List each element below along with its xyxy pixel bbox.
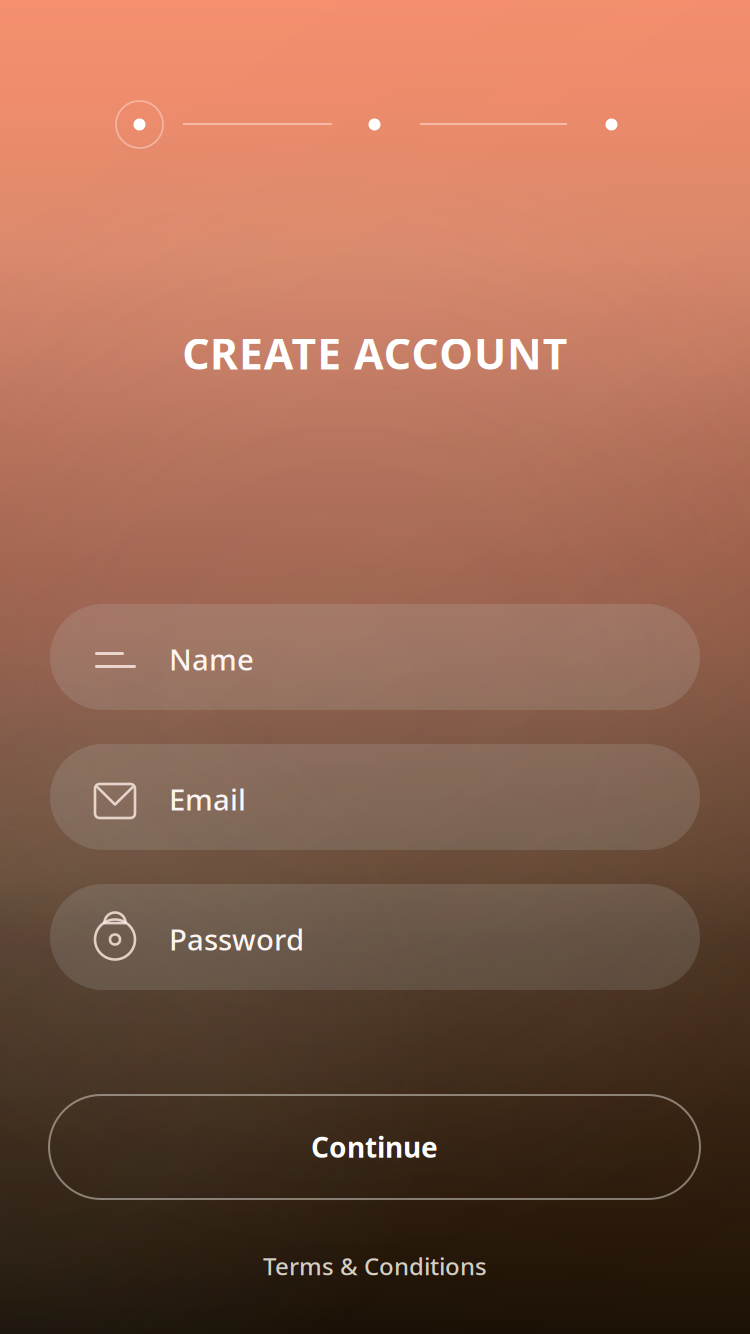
staticText: Name xyxy=(169,639,254,678)
staticText: Password xyxy=(169,919,304,958)
staticText: Continue xyxy=(311,1128,438,1166)
staticText: Email xyxy=(169,779,246,818)
button[interactable]: Password xyxy=(50,884,700,990)
staticText: Terms & Conditions xyxy=(263,1250,487,1282)
button[interactable]: Email xyxy=(50,744,700,850)
staticText: CREATE ACCOUNT xyxy=(182,325,568,381)
button[interactable]: Terms & Conditions xyxy=(0,1244,750,1288)
button[interactable]: Name xyxy=(50,604,700,710)
button[interactable]: Continue xyxy=(49,1095,700,1199)
